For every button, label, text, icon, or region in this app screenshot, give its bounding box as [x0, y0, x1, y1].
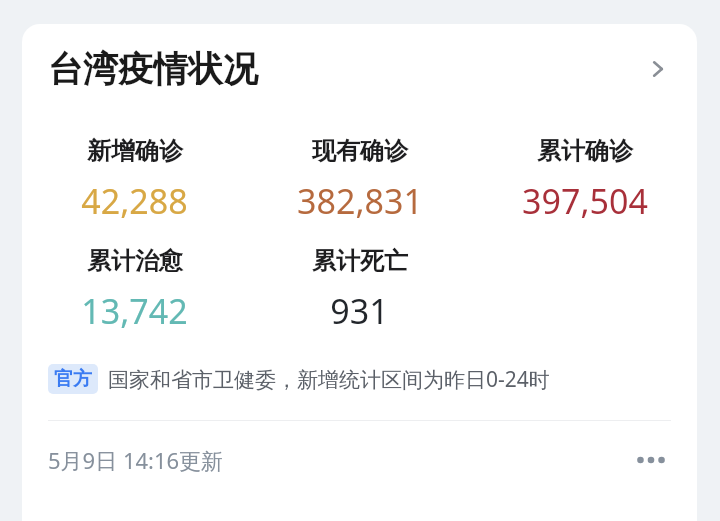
button[interactable]: More options [631, 440, 671, 480]
button[interactable]: 新增确诊 [22, 136, 247, 224]
staticText: 累计死亡 [312, 246, 408, 276]
staticText: 5月9日 14:16更新 [48, 445, 224, 475]
staticText: 931 [330, 288, 389, 334]
button[interactable]: 台湾疫情状况 [22, 24, 697, 114]
button[interactable]: 累计死亡 [247, 246, 472, 334]
other: More details [641, 52, 675, 86]
staticText: 累计治愈 [87, 246, 183, 276]
staticText: 382,831 [297, 178, 423, 224]
staticText: 现有确诊 [312, 136, 408, 166]
staticText: 官方 [54, 367, 92, 391]
staticText: 国家和省市卫健委，新增统计区间为昨日0-24时 [108, 365, 550, 394]
staticText: 新增确诊 [87, 136, 183, 166]
staticText: 累计确诊 [537, 136, 633, 166]
staticText: 42,288 [81, 178, 188, 224]
staticText: 台湾疫情状况 [48, 47, 258, 91]
button[interactable]: 现有确诊 [247, 136, 472, 224]
staticText: 397,504 [522, 178, 648, 224]
button[interactable]: 累计确诊 [472, 136, 697, 224]
staticText: 13,742 [81, 288, 188, 334]
button[interactable]: 累计治愈 [22, 246, 247, 334]
